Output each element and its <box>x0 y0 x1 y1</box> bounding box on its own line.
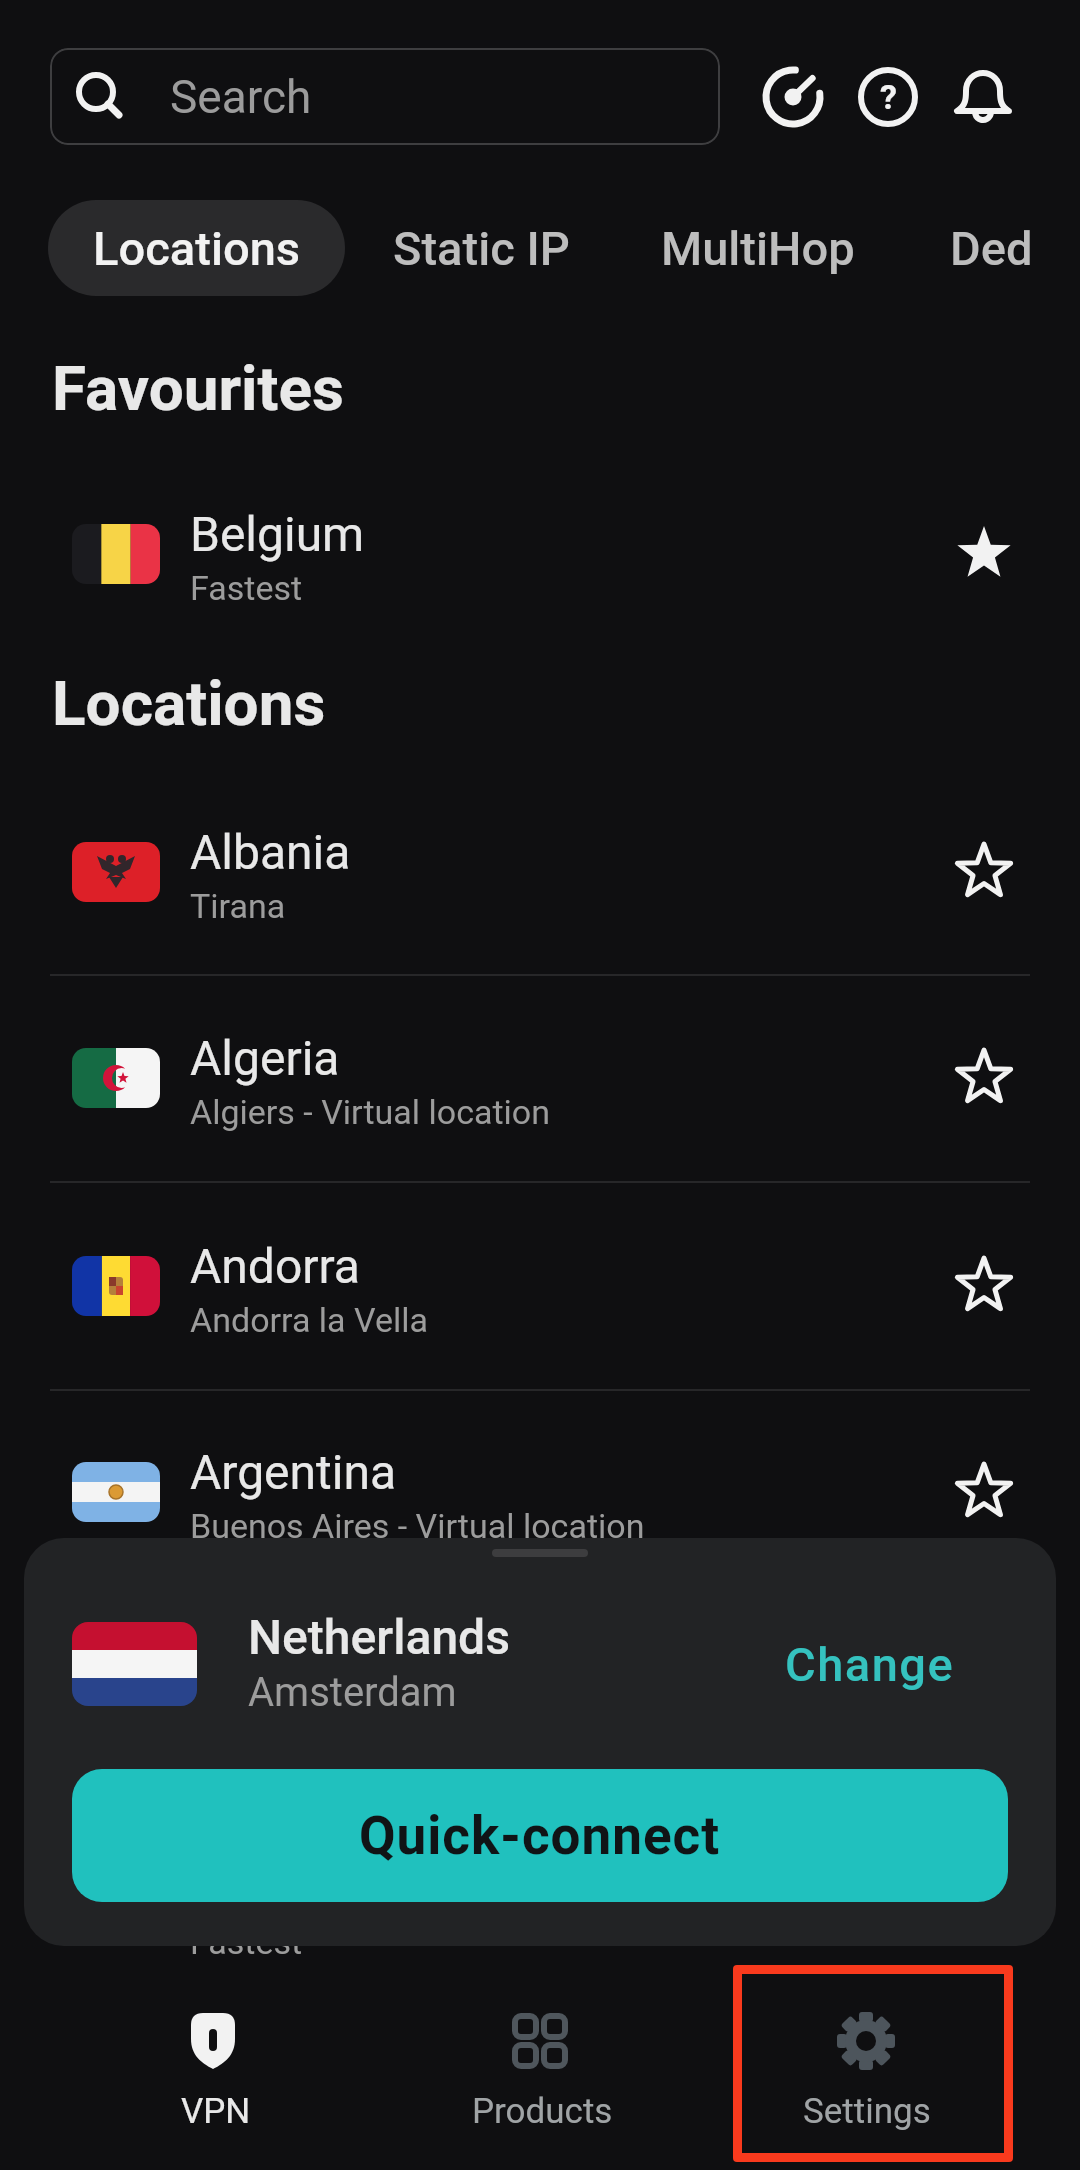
staticText: Tirana <box>190 886 286 926</box>
staticText: Quick-connect <box>359 1805 721 1867</box>
staticText: Amsterdam <box>248 1669 457 1716</box>
button[interactable]: Belgium <box>0 450 1080 658</box>
staticText: Argentina <box>190 1444 397 1500</box>
button[interactable]: Quick-connect <box>72 1769 1008 1902</box>
staticText: Netherlands <box>248 1609 511 1665</box>
staticText: Belgium <box>190 506 365 562</box>
staticText: Andorra la Vella <box>190 1300 428 1340</box>
staticText: Products <box>472 2091 613 2132</box>
button[interactable] <box>759 63 827 131</box>
button[interactable]: Static IP <box>370 200 592 296</box>
button[interactable] <box>952 1460 1016 1524</box>
staticText: Locations <box>93 221 301 276</box>
button[interactable] <box>952 1254 1016 1318</box>
button[interactable] <box>952 840 1016 904</box>
staticText: Algeria <box>190 1030 340 1086</box>
staticText: Fastest <box>190 1922 303 1962</box>
staticText: Search <box>170 70 312 124</box>
staticText: ? <box>880 77 897 117</box>
button[interactable]: Search <box>50 48 720 145</box>
button[interactable]: Argentina <box>0 1388 1080 1596</box>
staticText: VPN <box>181 2091 251 2132</box>
button[interactable]: ? <box>854 63 922 131</box>
staticText: Ded <box>950 221 1033 276</box>
staticText: Locations <box>52 667 326 740</box>
button[interactable] <box>93 1966 333 2156</box>
button[interactable] <box>949 63 1017 131</box>
staticText: Static IP <box>393 221 570 276</box>
staticText: Andorra <box>190 1238 360 1294</box>
staticText: Algiers - Virtual location <box>190 1092 551 1132</box>
staticText: Favourites <box>52 352 344 425</box>
button[interactable] <box>952 522 1016 586</box>
button[interactable]: Albania <box>0 768 1080 976</box>
button[interactable]: Locations <box>48 200 345 296</box>
button[interactable]: Change <box>740 1622 1000 1706</box>
staticText: Change <box>785 1637 955 1692</box>
button[interactable] <box>952 1046 1016 1110</box>
button[interactable]: Algeria <box>0 974 1080 1182</box>
staticText: MultiHop <box>661 221 855 276</box>
button[interactable]: Andorra <box>0 1182 1080 1390</box>
button[interactable] <box>420 1966 660 2156</box>
button[interactable] <box>746 1966 986 2156</box>
staticText: Buenos Aires - Virtual location <box>190 1506 645 1546</box>
button[interactable]: Ded <box>950 200 1080 296</box>
staticText: Albania <box>190 824 351 880</box>
staticText: Fastest <box>190 568 303 608</box>
button[interactable]: MultiHop <box>645 200 871 296</box>
staticText: Settings <box>803 2091 931 2132</box>
